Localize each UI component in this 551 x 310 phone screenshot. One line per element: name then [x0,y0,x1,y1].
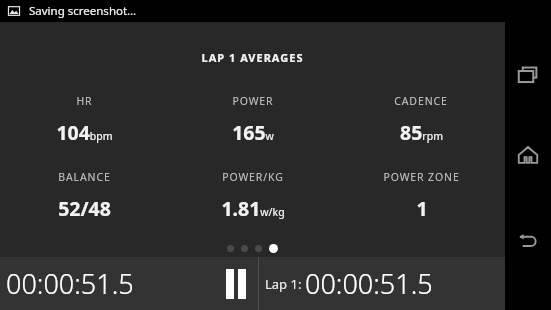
button[interactable]: Lap 1: [259,257,505,310]
staticText: POWER/KG [222,170,284,184]
staticText: 1 [416,195,428,222]
staticText: 00:00:51.5 [6,265,134,302]
button[interactable]: Home [505,132,551,178]
staticText: 85rpm [400,119,443,146]
staticText: BALANCE [58,170,111,184]
staticText: 1.81w/kg [221,195,285,222]
staticText: 104bpm [56,119,113,146]
button[interactable]: Recent apps [505,52,551,98]
staticText: POWER ZONE [383,170,460,184]
staticText: POWER [232,94,274,108]
staticText: CADENCE [394,94,448,108]
button[interactable]: Pause [213,257,258,310]
staticText: Lap 1: [265,275,302,293]
staticText: 165w [232,119,274,146]
staticText: 00:00:51.5 [305,265,433,302]
staticText: Saving screenshot… [29,3,137,19]
staticText: LAP 1 AVERAGES [0,50,505,65]
button[interactable]: 00:00:51.5 [0,257,213,310]
staticText: 52/48 [58,195,111,222]
button[interactable]: Back [505,216,551,262]
staticText: HR [76,94,93,108]
